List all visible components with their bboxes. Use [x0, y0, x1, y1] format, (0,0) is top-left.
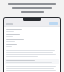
button[interactable]	[4, 43, 60, 48]
button[interactable]	[4, 28, 60, 33]
button[interactable]	[4, 59, 60, 64]
button[interactable]	[4, 33, 60, 38]
button[interactable]	[4, 38, 60, 43]
button[interactable]: Action	[49, 22, 58, 25]
